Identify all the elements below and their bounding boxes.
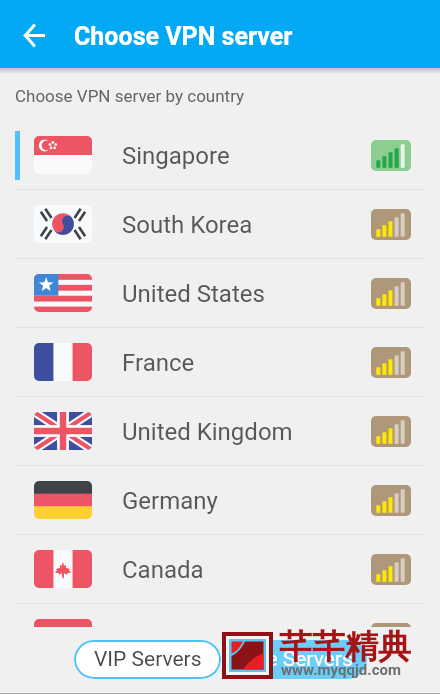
other: Signal strength (371, 485, 411, 516)
button[interactable]: United Kingdom (0, 397, 440, 466)
staticText: Canada (122, 556, 204, 584)
button[interactable]: Canada (0, 535, 440, 604)
button[interactable]: United States (0, 259, 440, 328)
button[interactable]: Singapore (0, 121, 440, 190)
staticText: Singapore (122, 142, 230, 170)
other: Signal strength (371, 209, 411, 240)
staticText: Choose VPN server by country (15, 86, 245, 106)
staticText: www.myqqjd.com (281, 661, 401, 679)
other: Signal strength (371, 554, 411, 585)
button[interactable]: Free Servers (223, 640, 367, 679)
staticText: Free Servers (237, 647, 353, 672)
other: Signal strength (371, 347, 411, 378)
staticText: Choose VPN server (74, 22, 293, 51)
staticText: United States (122, 280, 265, 308)
other: Signal strength (371, 278, 411, 309)
other: Signal strength (371, 416, 411, 447)
other: Signal strength (371, 140, 411, 171)
button[interactable]: France (0, 328, 440, 397)
staticText: 芊芊精典 (279, 626, 411, 668)
staticText: South Korea (122, 211, 253, 239)
staticText: Germany (122, 487, 218, 515)
button[interactable]: South Korea (0, 190, 440, 259)
button[interactable]: Back (10, 11, 58, 59)
button[interactable]: Germany (0, 466, 440, 535)
staticText: France (122, 349, 195, 377)
other: Signal strength (371, 623, 411, 627)
button[interactable]: Turkey (0, 604, 440, 627)
staticText: United Kingdom (122, 418, 293, 446)
button[interactable]: VIP Servers (74, 640, 221, 679)
staticText: VIP Servers (94, 647, 202, 672)
